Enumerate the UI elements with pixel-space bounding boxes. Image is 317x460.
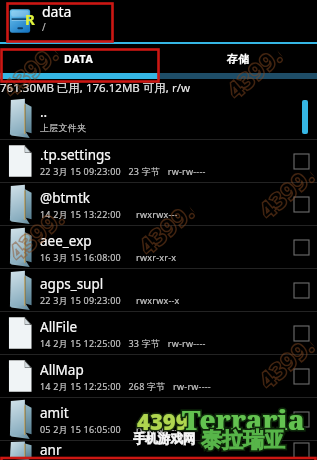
staticText: 4399 — [137, 406, 189, 436]
button[interactable]: Select item — [294, 240, 309, 255]
staticText: AllFile — [40, 318, 78, 336]
button[interactable]: Select item — [294, 197, 309, 212]
staticText: 上层文件夹 — [40, 122, 86, 133]
button[interactable]: Root Explorer, navigate up — [0, 0, 39, 42]
staticText: aee_exp — [40, 232, 92, 250]
staticText: anr — [40, 441, 62, 459]
staticText: amit — [40, 404, 69, 422]
button[interactable]: anr — [0, 441, 317, 460]
button[interactable]: .. — [0, 97, 317, 140]
staticText: 4399 — [137, 406, 189, 436]
staticText: 16 3月 15 16:08:00 rwxr-xr-x — [40, 251, 177, 263]
button[interactable]: AllMap — [0, 355, 317, 398]
button[interactable]: .tp.settings — [0, 140, 317, 183]
staticText: .. — [40, 103, 48, 121]
button[interactable]: agps_supl — [0, 269, 317, 312]
staticText: 存储 — [227, 52, 249, 66]
staticText: R — [25, 9, 35, 29]
button[interactable]: aee_exp — [0, 226, 317, 269]
staticText: AllMap — [40, 361, 84, 379]
staticText: 761.30MB 已用, 176.12MB 可用, r/w — [0, 80, 190, 96]
staticText: 4399.cn — [251, 329, 317, 396]
staticText: 4399.cn — [131, 195, 201, 262]
button[interactable]: Select item — [294, 369, 309, 384]
staticText: Terraria — [182, 401, 305, 438]
staticText: Terraria — [182, 401, 305, 438]
staticText: 4399.cn — [0, 37, 65, 104]
staticText: DATA — [64, 52, 94, 66]
staticText: 14 2月 15 13:22:00 rwxrwx--- — [40, 208, 178, 220]
button[interactable]: DATA — [0, 44, 158, 73]
staticText: 4399.cn — [1, 201, 71, 268]
staticText: data — [42, 2, 72, 21]
staticText: / — [42, 20, 46, 34]
button[interactable]: AllFile — [0, 312, 317, 355]
staticText: 05 2月 15 16:05:00 rwxrwx--- — [40, 423, 178, 435]
staticText: .tp.settings — [40, 146, 111, 164]
staticText: 手机游戏网 — [133, 431, 196, 447]
staticText: 4399.cn — [219, 39, 289, 106]
staticText: 22 3月 15 09:23:00 23 字节 rw-rw---- — [40, 165, 206, 177]
staticText: @btmtk — [40, 189, 91, 207]
button[interactable]: 存储 — [158, 44, 317, 73]
button[interactable]: @btmtk — [0, 183, 317, 226]
staticText: 14 2月 15 12:25:00 33 字节 rw-rw---- — [40, 337, 206, 349]
staticText: 14 2月 15 12:25:00 268 字节 rw-rw---- — [40, 380, 211, 392]
staticText: 泰拉瑞亚 — [201, 427, 285, 453]
staticText: agps_supl — [40, 275, 104, 293]
staticText: 4399.cn — [251, 159, 317, 226]
staticText: 泰拉瑞亚 — [201, 427, 285, 453]
button[interactable]: amit — [0, 398, 317, 441]
staticText: 22 3月 15 09:23:00 rwxrwx--x — [40, 294, 180, 306]
button[interactable]: Select item — [294, 412, 309, 427]
button[interactable]: Select item — [294, 283, 309, 298]
button[interactable]: Select item — [294, 154, 309, 169]
button[interactable]: Select item — [294, 443, 309, 458]
button[interactable]: Select item — [294, 326, 309, 341]
